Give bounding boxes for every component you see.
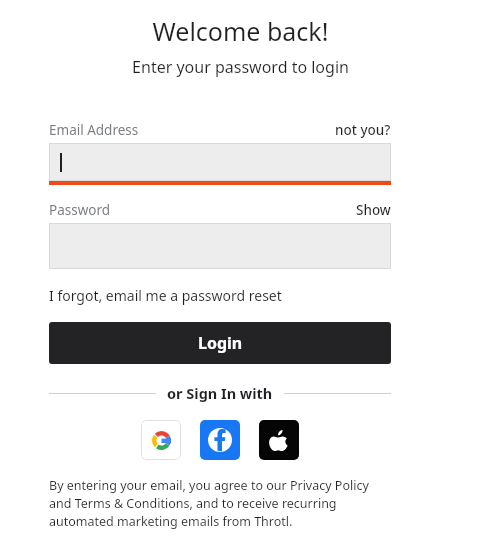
- staticText: not you?: [335, 121, 391, 139]
- button[interactable]: [49, 223, 391, 269]
- staticText: Email Address: [49, 121, 139, 139]
- button[interactable]: Show: [356, 201, 391, 219]
- button[interactable]: [49, 143, 391, 185]
- button[interactable]: Sign in with Google: [141, 420, 181, 460]
- button[interactable]: Sign in with Facebook: [200, 420, 240, 460]
- staticText: Password: [49, 201, 111, 219]
- staticText: Welcome back!: [0, 14, 481, 48]
- staticText: Enter your password to login: [0, 56, 481, 78]
- button[interactable]: I forgot, email me a password reset: [49, 286, 282, 305]
- button[interactable]: Sign in with Apple: [259, 420, 299, 460]
- staticText: Login: [198, 332, 243, 354]
- staticText: or Sign In with: [167, 383, 273, 403]
- staticText: Show: [356, 201, 391, 219]
- staticText: By entering your email, you agree to our…: [49, 477, 381, 530]
- button[interactable]: not you?: [335, 121, 391, 139]
- button[interactable]: Login: [49, 322, 391, 364]
- staticText: I forgot, email me a password reset: [49, 286, 282, 305]
